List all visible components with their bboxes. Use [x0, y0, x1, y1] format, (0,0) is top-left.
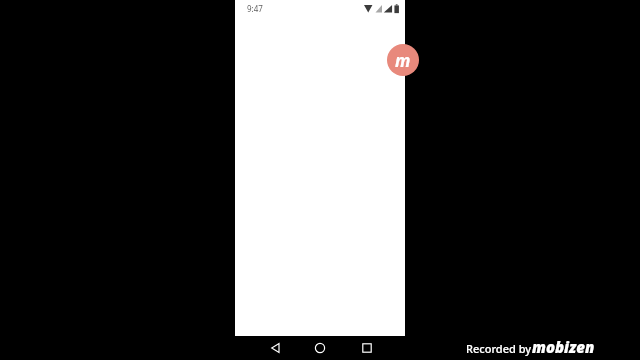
- staticText: m: [395, 49, 411, 72]
- button[interactable]: Recent apps: [355, 336, 379, 360]
- staticText: 9:47: [247, 3, 263, 14]
- staticText: Recorded by: [466, 341, 532, 356]
- staticText: mobizen: [532, 337, 595, 357]
- button[interactable]: Back: [264, 336, 288, 360]
- button[interactable]: Mobizen floating button: [387, 44, 419, 76]
- button[interactable]: Home: [308, 336, 332, 360]
